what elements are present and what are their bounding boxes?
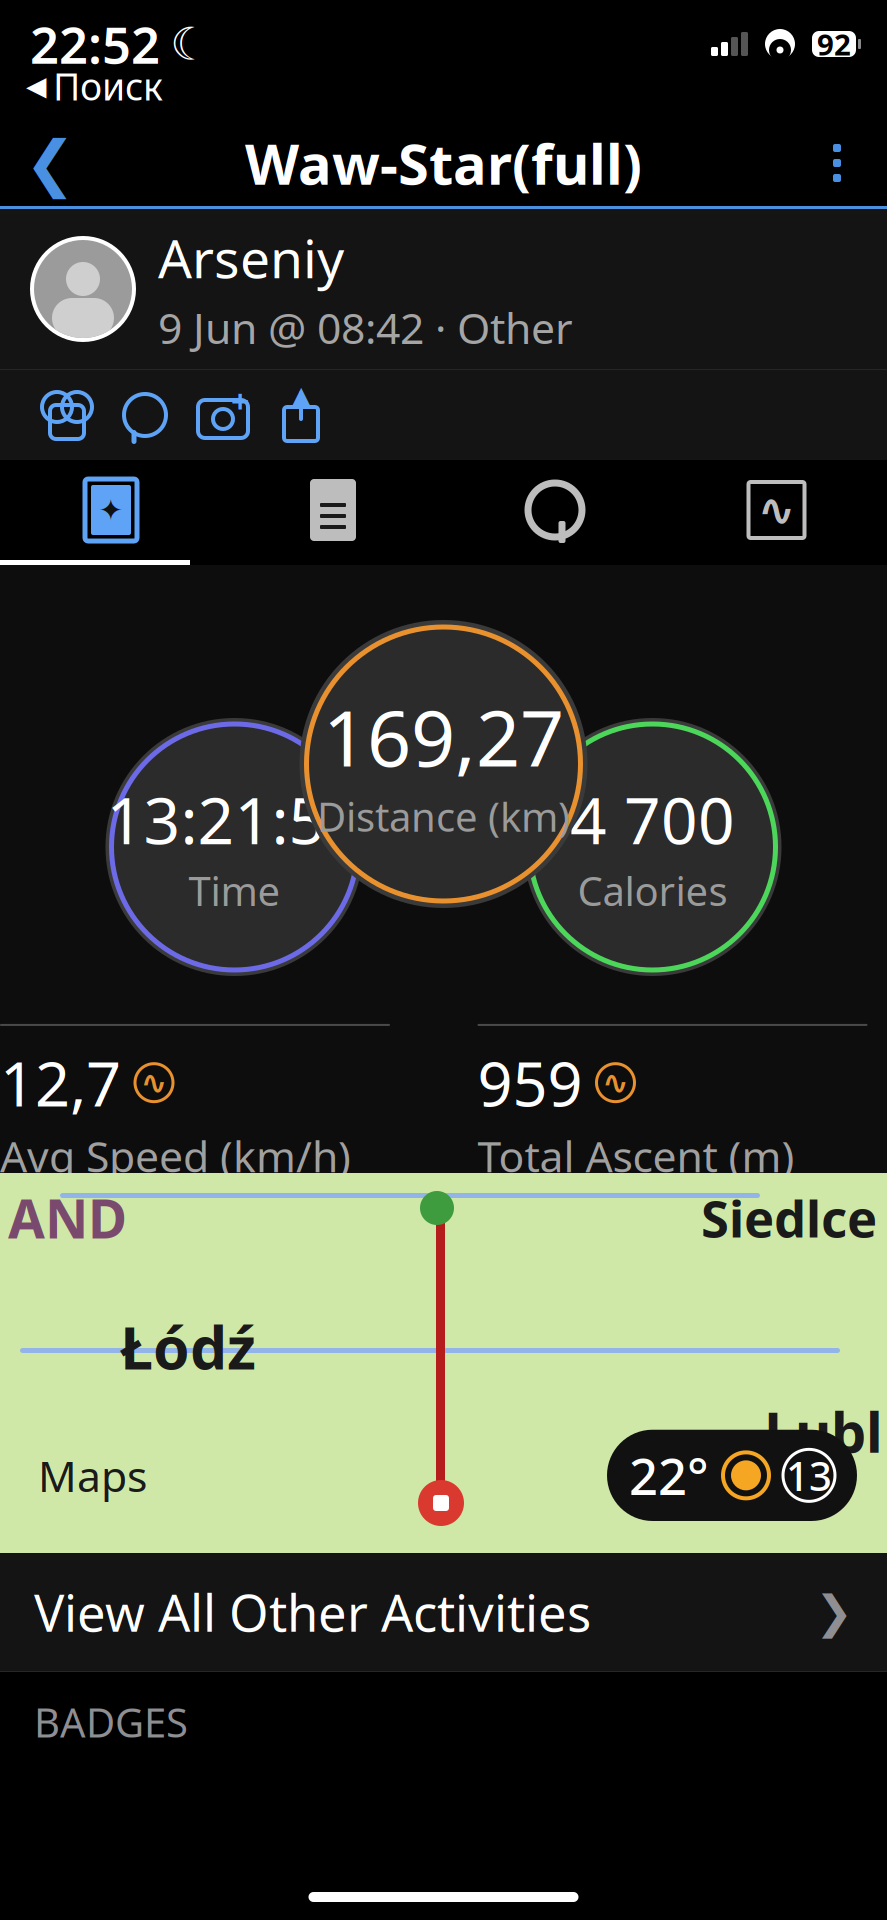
button[interactable]: Laps tab [444, 460, 666, 560]
button[interactable]: Share [262, 372, 340, 458]
staticText: Поиск [53, 61, 163, 111]
staticText: Lubl [764, 1394, 883, 1468]
staticText: Calories [577, 864, 727, 917]
staticText: 13:21:53 [106, 777, 362, 862]
staticText: Avg Speed (km/h) [0, 1127, 351, 1184]
staticText: 22:52 [30, 10, 160, 78]
staticText: Maps [38, 1447, 147, 1504]
staticText: ❯ [815, 1586, 853, 1638]
button[interactable]: Arseniy [0, 209, 887, 369]
staticText: BADGES [34, 1695, 188, 1748]
staticText: 22° [629, 1442, 709, 1509]
staticText: Time [188, 864, 280, 917]
staticText: View All Other Activities [34, 1578, 591, 1646]
staticText: 959 [477, 1042, 582, 1123]
button[interactable]: Comment [106, 372, 184, 458]
staticText: Łódź [120, 1308, 256, 1386]
staticText: ✦ [98, 493, 123, 527]
staticText: + [231, 380, 249, 422]
button[interactable]: View All Other Activities [0, 1553, 887, 1671]
staticText: 92 [817, 24, 851, 63]
staticText: 9 Jun @ 08:42 · Other [158, 299, 573, 356]
button[interactable]: Like [28, 372, 106, 458]
staticText: 12,7 [0, 1042, 121, 1123]
staticText: Waw-Star(full) [245, 126, 642, 200]
staticText: Total Ascent (m) [477, 1127, 794, 1184]
staticText: Arseniy [158, 222, 344, 293]
staticText: ☾ [170, 18, 211, 70]
button[interactable]: Map tab [0, 460, 222, 560]
staticText: Siedlce [701, 1184, 877, 1251]
button[interactable]: More options [787, 123, 887, 203]
button[interactable]: Charts tab [666, 460, 887, 560]
staticText: Distance (km) [317, 790, 570, 843]
staticText: ◀ [26, 71, 47, 101]
staticText: 4 700 [570, 777, 735, 862]
button[interactable]: Route map [0, 1173, 887, 1553]
staticText: 13 [786, 1449, 832, 1502]
staticText: ▲ [292, 381, 310, 409]
button[interactable]: Add photo [184, 372, 262, 458]
staticText: ❮ [24, 128, 75, 198]
button[interactable]: Back [0, 123, 100, 203]
staticText: ∿ [757, 484, 795, 536]
button[interactable]: ◀ [26, 61, 163, 111]
staticText: ∿ [602, 1064, 629, 1101]
staticText: AND [8, 1182, 127, 1253]
button[interactable]: Details tab [222, 460, 444, 560]
staticText: ∿ [140, 1064, 167, 1101]
staticText: 169,27 [323, 685, 564, 788]
